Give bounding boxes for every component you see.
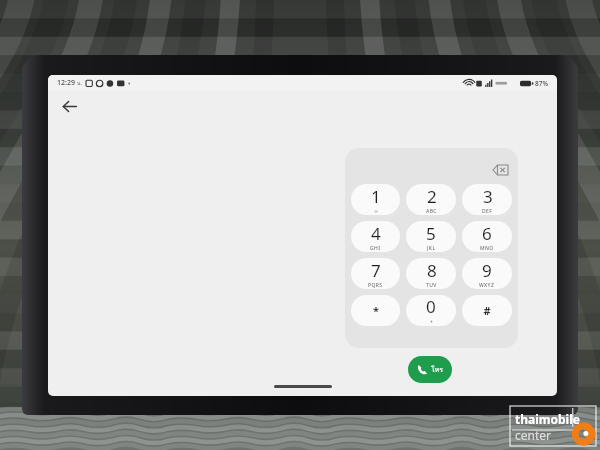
button[interactable]: 7: [351, 258, 400, 289]
staticText: 87%: [535, 79, 548, 88]
button[interactable]: 1: [351, 184, 400, 215]
staticText: 7: [371, 259, 381, 282]
staticText: 6: [482, 222, 492, 245]
staticText: #: [483, 303, 491, 318]
button[interactable]: 4: [351, 221, 400, 252]
staticText: 12:29: [57, 78, 75, 88]
staticText: 9: [482, 259, 492, 282]
button[interactable]: 6: [462, 221, 512, 252]
staticText: thaimobile: [515, 411, 580, 427]
button[interactable]: 9: [462, 258, 512, 289]
button[interactable]: 0: [406, 295, 456, 326]
button[interactable]: Backspace: [487, 161, 513, 179]
staticText: 4: [371, 222, 381, 245]
staticText: MNO: [480, 245, 494, 252]
staticText: WXYZ: [479, 282, 495, 289]
button[interactable]: Back: [52, 89, 86, 123]
button[interactable]: 8: [406, 258, 456, 289]
staticText: *: [373, 303, 379, 318]
button[interactable]: โทร: [408, 356, 452, 383]
staticText: 5: [426, 222, 436, 245]
staticText: JKL: [427, 245, 436, 252]
staticText: +: [430, 319, 433, 326]
staticText: 3: [483, 185, 493, 208]
button[interactable]: 2: [406, 184, 456, 215]
staticText: PQRS: [368, 282, 383, 289]
staticText: center: [515, 427, 552, 443]
staticText: GHI: [370, 245, 381, 252]
staticText: TUV: [426, 282, 437, 289]
staticText: ∞: [374, 208, 379, 214]
button[interactable]: 5: [406, 221, 456, 252]
staticText: โทร: [431, 364, 444, 375]
staticText: ABC: [426, 208, 437, 215]
staticText: 8: [427, 259, 437, 282]
button[interactable]: #: [462, 295, 512, 326]
staticText: น.: [77, 79, 82, 87]
staticText: DEF: [482, 208, 493, 215]
staticText: 0: [426, 295, 436, 318]
staticText: 2: [427, 185, 437, 208]
staticText: 1: [371, 185, 381, 208]
button[interactable]: *: [351, 295, 400, 326]
button[interactable]: 3: [462, 184, 512, 215]
